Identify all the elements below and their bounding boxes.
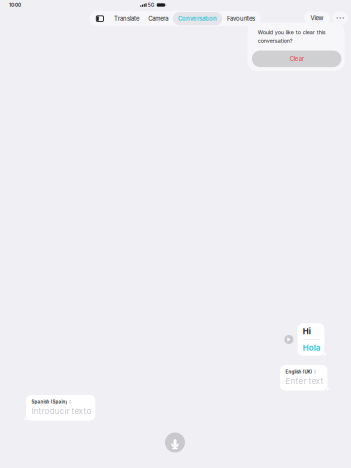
staticText: Favourites bbox=[227, 15, 255, 22]
staticText: Camera bbox=[148, 15, 168, 22]
button[interactable]: Start speaking bbox=[165, 432, 185, 452]
staticText: 5G bbox=[148, 2, 155, 8]
staticText: Introducir texto bbox=[31, 406, 91, 416]
button[interactable]: Camera bbox=[144, 12, 173, 25]
staticText: Spanish (Spain) bbox=[31, 399, 67, 404]
staticText: Clear bbox=[290, 55, 304, 62]
staticText: Translate bbox=[114, 15, 139, 22]
button[interactable]: Favourites bbox=[222, 12, 259, 25]
button[interactable]: English (UK) bbox=[280, 365, 327, 391]
staticText: Enter text bbox=[285, 376, 323, 386]
staticText: conversation? bbox=[258, 38, 293, 44]
staticText: Would you like to clear this bbox=[258, 29, 326, 36]
staticText: 10:00 bbox=[9, 2, 21, 8]
staticText: Conversation bbox=[178, 15, 217, 22]
staticText: View bbox=[310, 14, 323, 22]
staticText: Hi bbox=[303, 327, 311, 336]
staticText: English (UK) bbox=[285, 369, 312, 374]
button[interactable]: View bbox=[304, 11, 330, 24]
staticText: Hola bbox=[303, 343, 321, 353]
button[interactable]: Play translation bbox=[284, 335, 293, 344]
button[interactable]: Clear bbox=[252, 50, 341, 67]
button[interactable]: More options bbox=[332, 11, 348, 24]
button[interactable]: Show sidebar bbox=[91, 13, 109, 25]
button[interactable]: Translate bbox=[109, 12, 144, 25]
button[interactable]: Conversation bbox=[173, 12, 222, 25]
button[interactable]: Spanish (Spain) bbox=[26, 395, 95, 421]
